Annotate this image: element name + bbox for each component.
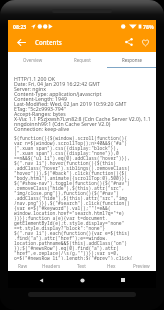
staticText: X-Via: 1.1 PSzjxwsh7Lvn82:8 (Cdn Cache S… — [14, 115, 151, 122]
staticText: $("#show-nav").toggle(function(){$("#nav… — [14, 180, 130, 186]
staticText: Connection: keep-alive — [14, 125, 70, 132]
staticText: ==n&&$("ul li").eq(0).addClass("hover")}… — [14, 155, 130, 161]
staticText: nngdoinnh99:1 (Cdn Cache Server V2.0) — [14, 120, 111, 127]
staticText: (".xuan span").css({display:"none"}),0 — [14, 150, 119, 156]
staticText: .find("a").attr("href");e==window. — [14, 235, 108, 241]
staticText: .removeClass("hide"),$(this).attr("src", — [14, 185, 125, 191]
button[interactable]: Overview — [8, 52, 58, 68]
button[interactable]: Favorite — [137, 32, 153, 52]
button[interactable]: Response — [107, 52, 156, 68]
button[interactable]: Back — [8, 32, 34, 52]
staticText: .addClass("hide"),$(this).attr("src","im… — [14, 195, 128, 201]
staticText: Contents — [35, 38, 62, 46]
staticText: getElementById(e);t.style.display="none" — [14, 220, 125, 226]
staticText: 78% — [143, 23, 154, 30]
staticText: ETag: "5c2c9993-794" — [14, 105, 66, 112]
staticText: Last-Modified: Wed, 02 Jan 2019 10:59:20… — [14, 100, 127, 107]
staticText: $(".nav li").hover(function(){$(this) — [14, 160, 116, 166]
staticText: Accept-Ranges: bytes — [14, 110, 66, 117]
staticText: "hover")}),$("#back").click(function(){$… — [14, 170, 128, 176]
button[interactable]: Share — [121, 32, 137, 52]
staticText: window.location.href="search.html?q="+e) — [14, 210, 125, 216]
button[interactable]: Home — [74, 272, 90, 288]
staticText: Server: nginx — [14, 85, 47, 92]
staticText: $(".nav li").each(function(){var e=$(thi… — [14, 230, 130, 236]
button[interactable]: Text — [66, 260, 96, 271]
staticText: Overview — [23, 57, 43, 63]
button[interactable]: Headers — [37, 260, 66, 271]
staticText: Preview — [133, 263, 150, 269]
staticText: /nav.png")}),$("#search").click(function… — [14, 200, 130, 206]
staticText: (".xuan span").css({display:"block"}), — [14, 145, 119, 151]
staticText: var n=$(window).scrollTop();n>40&&$("#a"… — [14, 140, 128, 146]
staticText: Hex — [107, 263, 116, 269]
staticText: Content-Type: application/javascript — [14, 90, 102, 97]
staticText: Date: Fri, 04 Jan 2019 16:22:42 GMT — [14, 80, 100, 87]
staticText: .addClass("hover").siblings().removeClas… — [14, 165, 130, 171]
staticText: "img/close.png")},function(){$("#nav") — [14, 190, 119, 196]
staticText: Content-Length: 1949 — [14, 95, 67, 102]
staticText: })});function a(e){var t=document. — [14, 215, 108, 221]
staticText: Raw — [18, 263, 28, 269]
staticText: Headers — [42, 263, 61, 269]
staticText: 08:23 — [13, 23, 27, 30]
button[interactable]: Back — [33, 272, 49, 288]
staticText: location.pathname&&$(this).addClass("on"… — [14, 240, 128, 246]
staticText: "href",e.replace(/\s/g,""))});var s=0, — [14, 250, 119, 256]
staticText: HTTP/1.1 200 OK — [14, 75, 55, 82]
button[interactable]: Preview — [126, 260, 156, 271]
staticText: "body,html").animate({scrollTop:0},500)}… — [14, 175, 130, 181]
staticText: $(function(){$(window).scroll(function()… — [14, 135, 128, 141]
staticText: Text — [77, 263, 86, 269]
button[interactable]: Request — [58, 52, 107, 68]
staticText: function(){s>0&&(s--,i())}),$("#next") — [14, 259, 119, 260]
staticText: Request — [74, 57, 91, 63]
button[interactable]: Recents — [115, 272, 131, 288]
staticText: });$("#newsRow").eq(0).find("a").attr( — [14, 245, 119, 251]
staticText: {var e=$("#keyword").val();""!=e&&( — [14, 205, 111, 211]
staticText: Response — [122, 57, 142, 63]
button[interactable]: Hex — [96, 260, 126, 271]
staticText: ==t.style.display?"block":"none"} — [14, 225, 105, 231]
staticText: o=$("#newsRow li").length;$("#prev").cli… — [14, 255, 133, 260]
button[interactable]: Raw — [8, 260, 37, 271]
